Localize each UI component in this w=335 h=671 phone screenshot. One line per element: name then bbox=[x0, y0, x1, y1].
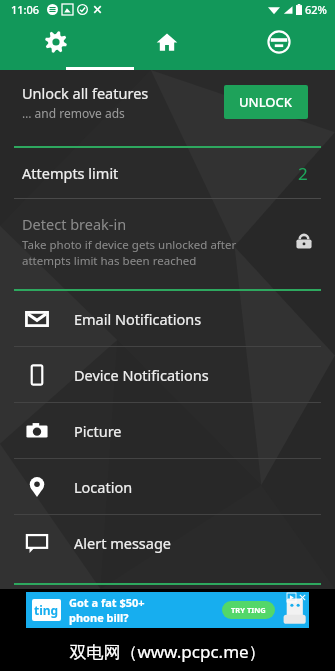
button[interactable]: Alert message bbox=[0, 515, 335, 570]
staticText: phone bill? bbox=[69, 610, 129, 625]
staticText: TRY TING bbox=[231, 605, 266, 615]
staticText: 11:06 bbox=[11, 2, 40, 17]
staticText: ting bbox=[34, 602, 59, 618]
staticText: 62% bbox=[305, 2, 327, 17]
staticText: Detect break-in bbox=[22, 214, 127, 234]
staticText: … and remove ads bbox=[22, 105, 125, 121]
button[interactable]: Picture bbox=[0, 403, 335, 458]
button[interactable]: Location bbox=[0, 459, 335, 514]
staticText: Unlock all features bbox=[22, 83, 149, 103]
button[interactable]: UNLOCK bbox=[224, 85, 308, 119]
staticText: Alert message bbox=[74, 533, 172, 553]
button[interactable]: Detect break-in bbox=[0, 199, 335, 283]
staticText: Picture bbox=[74, 421, 122, 441]
staticText: Device Notifications bbox=[74, 365, 209, 385]
other: Locked bbox=[295, 232, 313, 250]
staticText: Got a fat $50+ bbox=[69, 595, 145, 610]
button[interactable]: Settings bbox=[0, 19, 111, 70]
button[interactable]: TRY TING bbox=[222, 601, 275, 619]
staticText: Take photo if device gets unlocked after… bbox=[22, 237, 287, 268]
button[interactable]: ting bbox=[26, 592, 309, 628]
button[interactable]: Unlock all features bbox=[0, 70, 335, 134]
button[interactable]: Attempts limit bbox=[0, 148, 335, 198]
staticText: Email Notifications bbox=[74, 309, 202, 329]
staticText: Attempts limit bbox=[22, 163, 298, 183]
staticText: UNLOCK bbox=[239, 93, 293, 111]
button[interactable]: Device Notifications bbox=[0, 347, 335, 402]
button[interactable]: Email Notifications bbox=[0, 291, 335, 346]
staticText: Location bbox=[74, 477, 133, 497]
staticText: 2 bbox=[298, 162, 308, 185]
button[interactable]: Home bbox=[111, 19, 223, 70]
button[interactable]: Intruder bbox=[223, 19, 335, 70]
staticText: 双电网（www.pcpc.me） bbox=[69, 640, 266, 663]
